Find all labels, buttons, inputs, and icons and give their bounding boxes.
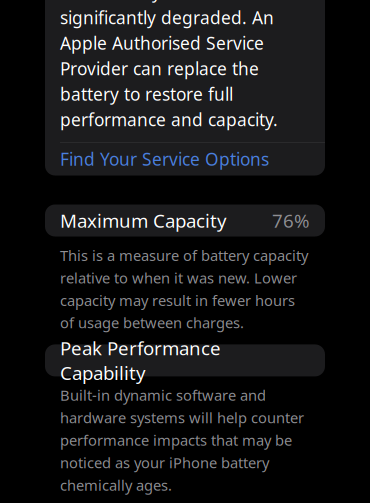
staticText: Maximum Capacity	[60, 208, 227, 233]
button[interactable]: Find Your Service Options	[45, 142, 325, 175]
staticText: 76%	[272, 208, 310, 233]
staticText: Peak Performance Capability	[60, 336, 221, 385]
staticText: Built-in dynamic software and hardware s…	[60, 385, 304, 495]
button[interactable]: Maximum Capacity	[45, 204, 325, 236]
staticText: Find Your Service Options	[60, 147, 269, 170]
staticText: Your battery's health is significantly d…	[60, 0, 278, 131]
staticText: This is a measure of battery capacity re…	[60, 245, 308, 332]
button[interactable]: Peak Performance Capability	[45, 344, 325, 376]
